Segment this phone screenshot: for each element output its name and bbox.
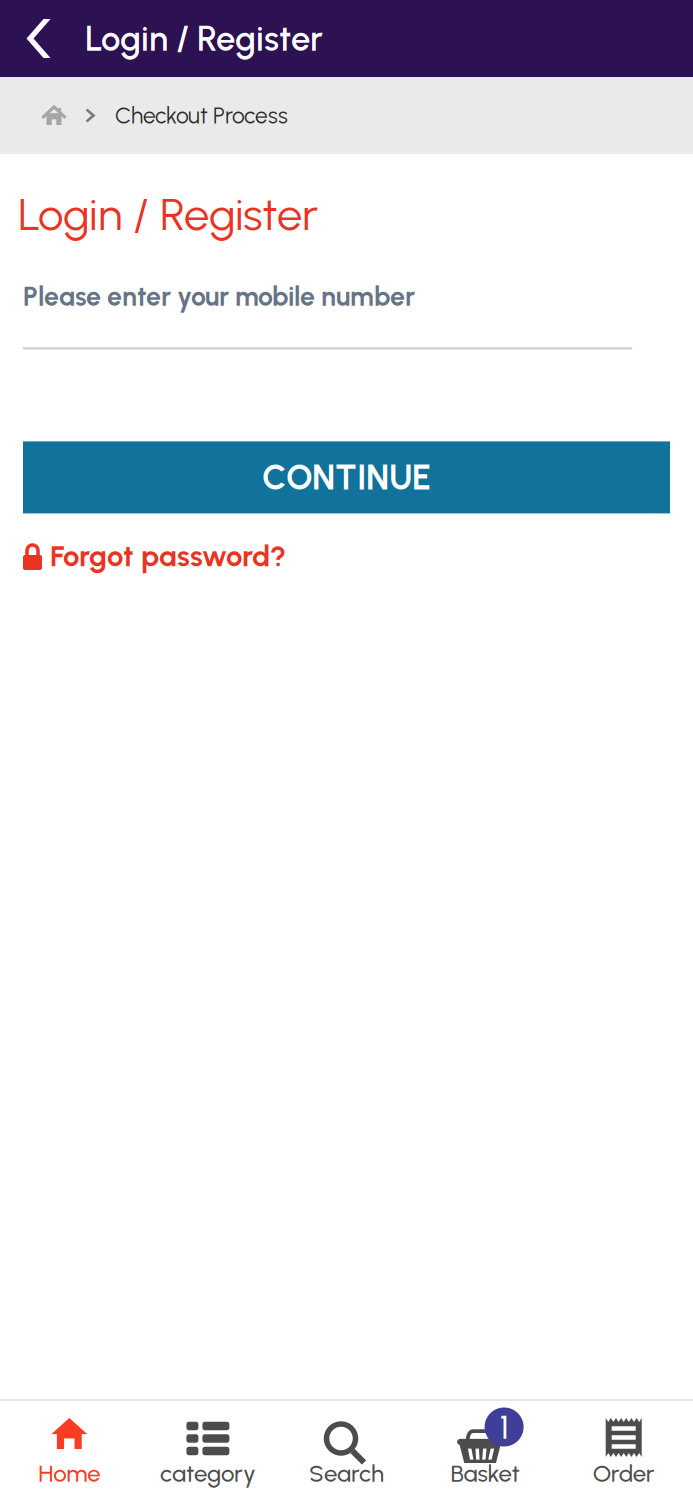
staticText: Search	[309, 1459, 384, 1488]
button[interactable]: Forgot password?	[23, 513, 286, 574]
staticText: category	[160, 1459, 256, 1488]
button[interactable]: Home	[0, 1401, 139, 1500]
staticText: Login / Register	[18, 187, 318, 241]
staticText: Checkout Process	[115, 102, 288, 129]
button[interactable]: 1	[416, 1401, 554, 1500]
staticText: Home	[38, 1459, 100, 1488]
staticText: Order	[593, 1459, 655, 1488]
button[interactable]: CONTINUE	[23, 441, 670, 513]
staticText: CONTINUE	[262, 457, 431, 498]
staticText: Please enter your mobile number	[23, 280, 415, 312]
staticText: Basket	[451, 1459, 520, 1488]
staticText: 1	[500, 1407, 509, 1447]
button[interactable]: Order	[554, 1401, 693, 1500]
staticText: Forgot password?	[50, 538, 286, 574]
button[interactable]: Search	[277, 1401, 416, 1500]
staticText: Login / Register	[85, 18, 323, 59]
button[interactable]: category	[139, 1401, 277, 1500]
button[interactable]: Home	[0, 90, 79, 140]
button[interactable]: Back	[0, 0, 77, 77]
